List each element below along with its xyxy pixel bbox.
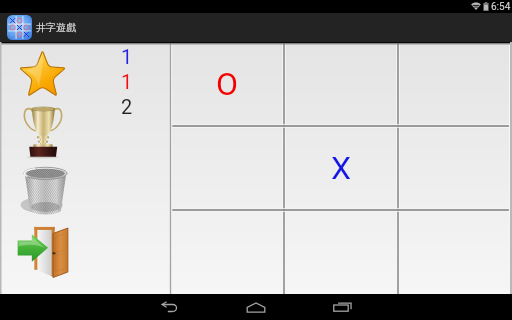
button[interactable] — [284, 42, 398, 126]
button[interactable] — [284, 210, 398, 294]
staticText: 井字遊戲 — [36, 21, 76, 34]
staticText: X — [331, 149, 352, 187]
button[interactable] — [170, 210, 284, 294]
button[interactable]: Recent apps — [320, 294, 365, 320]
button[interactable]: Home — [233, 294, 278, 320]
button[interactable]: X — [284, 126, 398, 210]
button[interactable] — [170, 126, 284, 210]
staticText: 1 — [121, 45, 133, 68]
button[interactable]: Exit — [17, 225, 72, 280]
button[interactable]: O — [170, 42, 284, 126]
button[interactable]: Best score — [18, 49, 67, 98]
staticText: O — [216, 65, 239, 103]
button[interactable]: Trophy — [23, 106, 63, 158]
button[interactable]: Back — [147, 294, 192, 320]
staticText: 6:54 — [491, 1, 511, 13]
button[interactable] — [398, 126, 512, 210]
button[interactable] — [398, 210, 512, 294]
button[interactable] — [398, 42, 512, 126]
staticText: 2 — [121, 95, 133, 118]
staticText: 1 — [121, 70, 133, 93]
button[interactable]: Reset scores — [24, 166, 67, 216]
